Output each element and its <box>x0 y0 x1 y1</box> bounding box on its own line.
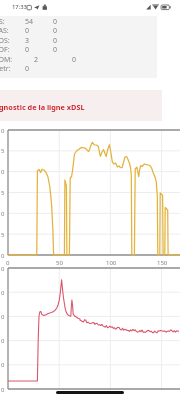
staticText: 0 <box>53 26 58 36</box>
staticText: 0 <box>1 252 5 260</box>
staticText: 0 <box>53 36 58 46</box>
staticText: 50 <box>56 259 63 267</box>
staticText: 0 <box>1 265 5 273</box>
staticText: 0 <box>1 127 5 135</box>
staticText: LOS: <box>0 36 10 46</box>
staticText: 3 <box>25 36 30 46</box>
staticText: 0 <box>1 289 5 297</box>
staticText: 5 <box>1 231 5 239</box>
staticText: 0 <box>25 64 30 74</box>
staticText: 0 <box>25 26 30 36</box>
staticText: 0 <box>25 45 30 55</box>
staticText: 0 <box>72 55 77 65</box>
staticText: 0 <box>1 168 5 176</box>
staticText: 5 <box>1 189 5 197</box>
staticText: gnostic de la ligne xDSL <box>0 102 85 112</box>
staticText: 54 <box>25 17 34 27</box>
staticText: ES: <box>0 17 5 27</box>
staticText: 0 <box>6 259 10 267</box>
staticText: FAS: <box>0 26 9 36</box>
staticText: 0 <box>1 386 5 394</box>
staticText: 0 <box>53 45 58 55</box>
staticText: Retr: <box>0 64 11 74</box>
staticText: LOF: <box>0 45 10 55</box>
staticText: 2 <box>34 55 39 65</box>
staticText: 100 <box>106 259 117 267</box>
staticText: 0 <box>1 361 5 369</box>
staticText: 17:33 <box>12 3 27 11</box>
staticText: 0 <box>1 210 5 218</box>
staticText: 0 <box>1 313 5 321</box>
staticText: 150 <box>157 259 168 267</box>
button[interactable]: gnostic de la ligne xDSL <box>0 90 162 121</box>
staticText: 0 <box>53 17 58 27</box>
staticText: 5 <box>1 147 5 155</box>
staticText: 0 <box>1 337 5 345</box>
staticText: LOM: <box>0 55 13 65</box>
